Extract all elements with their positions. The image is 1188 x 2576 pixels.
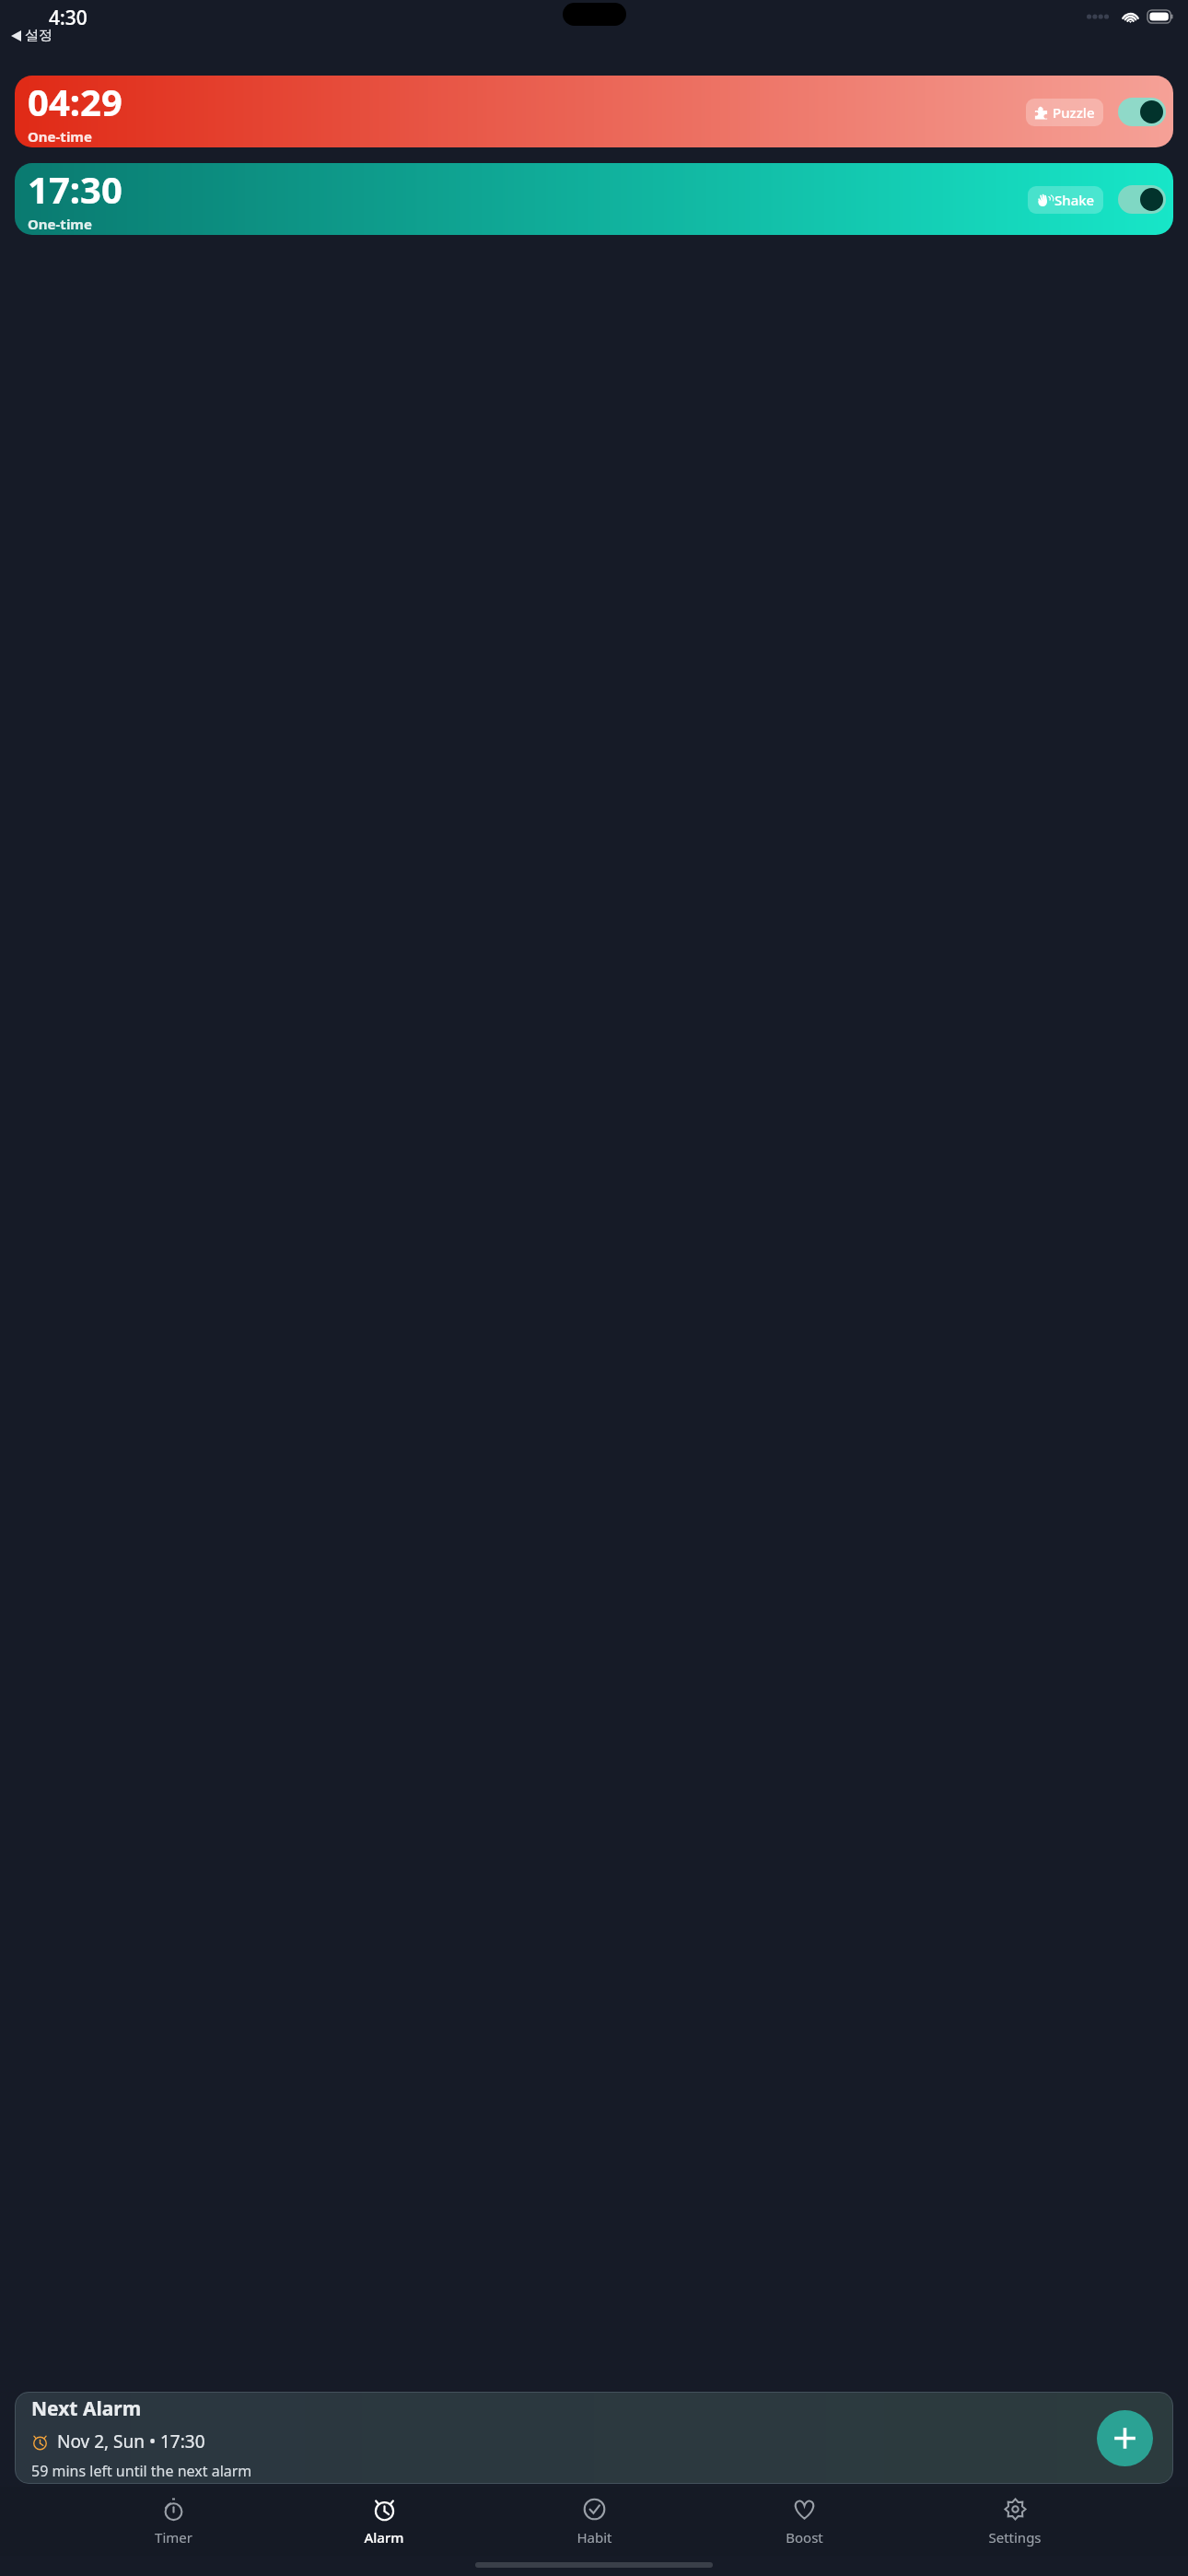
staticText: Puzzle xyxy=(1053,103,1095,122)
button[interactable]: Settings xyxy=(978,2492,1052,2551)
staticText: Nov 2, Sun • 17:30 xyxy=(57,2430,205,2453)
button[interactable]: 설정 xyxy=(8,26,55,45)
button[interactable]: Puzzle xyxy=(1026,99,1103,126)
button[interactable]: Toggle alarm 04:29 xyxy=(1118,98,1166,126)
staticText: Next Alarm xyxy=(31,2395,142,2422)
button[interactable]: 04:29 xyxy=(15,76,1173,147)
staticText: One-time xyxy=(28,215,92,233)
staticText: Alarm xyxy=(364,2528,404,2547)
staticText: Boost xyxy=(786,2528,823,2547)
button[interactable]: Add alarm xyxy=(1097,2410,1153,2466)
button[interactable]: Next Alarm xyxy=(15,2392,1173,2484)
button[interactable]: 17:30 xyxy=(15,163,1173,235)
staticText: 04:29 xyxy=(28,76,122,126)
button[interactable]: Shake xyxy=(1028,186,1103,214)
staticText: 59 mins left until the next alarm xyxy=(31,2461,252,2481)
button[interactable]: Toggle alarm 17:30 xyxy=(1118,185,1166,214)
staticText: Shake xyxy=(1054,191,1095,209)
button[interactable]: Timer xyxy=(136,2492,210,2551)
button[interactable]: Habit xyxy=(557,2492,631,2551)
button[interactable]: Boost xyxy=(767,2492,841,2551)
staticText: 17:30 xyxy=(28,164,122,214)
button[interactable]: Alarm xyxy=(347,2492,421,2551)
staticText: One-time xyxy=(28,127,92,146)
staticText: Timer xyxy=(155,2528,192,2547)
staticText: Settings xyxy=(988,2528,1042,2547)
staticText: Habit xyxy=(577,2528,612,2547)
staticText: 설정 xyxy=(25,27,52,44)
staticText: 4:30 xyxy=(49,5,87,31)
